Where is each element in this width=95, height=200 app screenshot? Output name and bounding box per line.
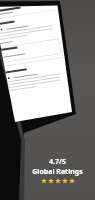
staticText: Global Ratings xyxy=(32,167,83,177)
button[interactable] xyxy=(0,38,62,64)
button[interactable]: App icon xyxy=(0,0,56,20)
staticText: 4.7/5 xyxy=(49,157,66,167)
